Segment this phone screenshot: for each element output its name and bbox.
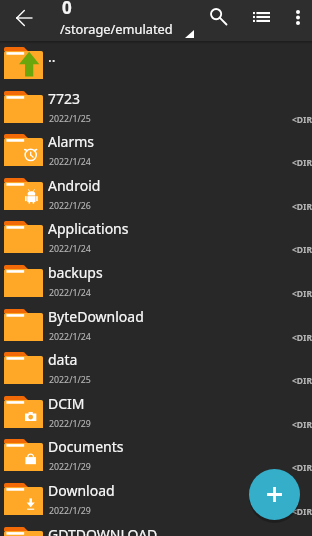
staticText: <DIR> — [292, 332, 312, 344]
button[interactable]: Documents — [0, 434, 312, 478]
button[interactable]: More options — [278, 0, 312, 41]
staticText: Download — [48, 481, 291, 500]
staticText: <DIR> — [292, 375, 312, 387]
button[interactable]: View mode — [244, 0, 280, 41]
staticText: .. — [48, 47, 56, 66]
button[interactable]: Add — [249, 469, 300, 520]
staticText: DCIM — [48, 394, 291, 413]
staticText: 7723 — [48, 89, 291, 108]
staticText: 2022/1/25 — [49, 374, 91, 386]
staticText: 2022/1/26 — [49, 200, 91, 212]
staticText: Alarms — [48, 132, 291, 151]
staticText: Applications — [48, 219, 291, 238]
staticText: 2022/1/24 — [49, 331, 91, 343]
button[interactable]: backups — [0, 260, 312, 304]
staticText: 2022/1/24 — [49, 243, 91, 255]
staticText: /storage/emulated — [60, 20, 173, 37]
staticText: 2022/1/29 — [49, 418, 91, 430]
staticText: <DIR> — [292, 244, 312, 256]
staticText: <DIR> — [292, 201, 312, 213]
button[interactable]: ByteDownload — [0, 304, 312, 348]
button[interactable]: Applications — [0, 216, 312, 260]
staticText: ByteDownload — [48, 307, 291, 326]
staticText: Documents — [48, 437, 291, 456]
staticText: <DIR> — [292, 462, 312, 474]
staticText: <DIR> — [292, 506, 312, 518]
button[interactable]: .. — [0, 42, 312, 86]
staticText: <DIR> — [292, 157, 312, 169]
button[interactable]: data — [0, 347, 312, 391]
button[interactable]: Download — [0, 478, 312, 522]
button[interactable]: GDTDOWNLOAD — [0, 522, 312, 536]
staticText: <DIR> — [292, 114, 312, 126]
staticText: 2022/1/29 — [49, 461, 91, 473]
button[interactable]: DCIM — [0, 391, 312, 435]
staticText: Android — [48, 176, 291, 195]
staticText: 2022/1/25 — [49, 113, 91, 125]
staticText: data — [48, 350, 291, 369]
staticText: GDTDOWNLOAD — [48, 525, 291, 536]
staticText: 2022/1/24 — [49, 287, 91, 299]
staticText: backups — [48, 263, 291, 282]
staticText: 2022/1/24 — [49, 156, 91, 168]
staticText: <DIR> — [292, 288, 312, 300]
button[interactable]: Search — [200, 0, 236, 41]
button[interactable]: Android — [0, 173, 312, 217]
button[interactable]: Alarms — [0, 129, 312, 173]
staticText: 0 — [62, 0, 72, 19]
button[interactable]: Back — [5, 0, 41, 41]
button[interactable]: 7723 — [0, 86, 312, 130]
staticText: 2022/1/29 — [49, 505, 91, 517]
staticText: <DIR> — [292, 419, 312, 431]
